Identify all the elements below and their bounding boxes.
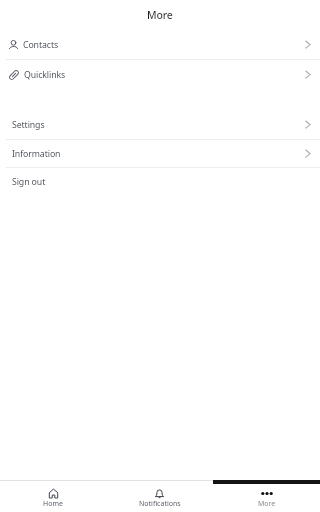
button[interactable]: Notifications xyxy=(106,480,213,512)
button[interactable]: Contacts xyxy=(0,30,320,59)
button[interactable]: Settings xyxy=(0,110,320,139)
staticText: Quicklinks xyxy=(24,69,66,81)
button[interactable]: Information xyxy=(0,140,320,167)
button[interactable]: Sign out xyxy=(0,168,320,196)
button[interactable]: Quicklinks xyxy=(0,60,320,89)
staticText: More xyxy=(147,8,173,22)
staticText: Settings xyxy=(12,119,45,131)
staticText: Notifications xyxy=(139,499,181,509)
staticText: More xyxy=(258,499,276,509)
staticText: Sign out xyxy=(12,176,46,188)
staticText: Information xyxy=(12,148,61,160)
button[interactable]: Home xyxy=(0,480,106,512)
staticText: Contacts xyxy=(23,39,59,51)
button[interactable]: More xyxy=(213,480,320,512)
staticText: Home xyxy=(43,499,63,509)
